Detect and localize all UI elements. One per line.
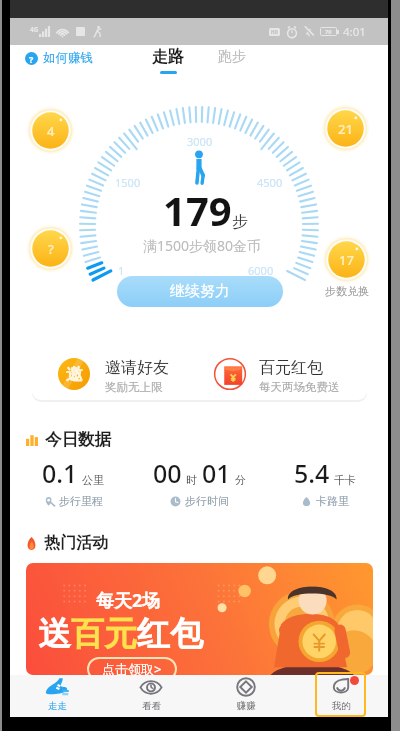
staticText: 分 <box>235 473 246 487</box>
staticText: 21 <box>338 120 353 138</box>
staticText: 00 <box>153 456 182 490</box>
staticText: 卡路里 <box>316 494 349 508</box>
button[interactable]: 21 <box>322 105 369 152</box>
button[interactable]: 走路 <box>152 47 184 74</box>
button[interactable]: 每天2场 <box>26 563 373 675</box>
staticText: 邀 <box>66 364 83 385</box>
button[interactable]: 赚赚 <box>198 675 293 717</box>
button[interactable]: 我的 <box>293 675 388 717</box>
staticText: 179 <box>163 183 232 237</box>
staticText: 红包 <box>137 613 203 655</box>
button[interactable]: 继续努力 <box>117 276 283 307</box>
button[interactable]: 邀 <box>58 347 169 400</box>
staticText: 看看 <box>142 700 161 712</box>
staticText: 时 <box>186 473 197 487</box>
staticText: HD <box>271 29 278 35</box>
staticText: 17 <box>339 251 354 269</box>
staticText: 点击领取> <box>102 660 162 675</box>
staticText: 跑步 <box>218 48 246 66</box>
button[interactable]: 4 <box>27 107 74 154</box>
staticText: 百元 <box>71 613 137 655</box>
staticText: 每天2场 <box>96 588 161 613</box>
button[interactable]: 5.4 <box>262 456 388 508</box>
staticText: 百元红包 <box>259 358 323 378</box>
staticText: 步数兑换 <box>325 284 369 298</box>
staticText: 3000 <box>187 134 213 149</box>
button[interactable]: 00 <box>136 456 262 508</box>
button[interactable]: 百元红包 <box>214 347 340 400</box>
button[interactable]: 看看 <box>104 675 198 717</box>
staticText: 邀请好友 <box>105 358 169 378</box>
button[interactable]: 17 <box>323 236 370 298</box>
staticText: 走路 <box>152 47 184 67</box>
staticText: 4G <box>30 25 39 34</box>
staticText: 5.4 <box>294 456 330 490</box>
staticText: 今日数据 <box>45 429 111 450</box>
button[interactable]: ? <box>25 50 93 66</box>
button[interactable]: 0.1 <box>10 456 136 508</box>
staticText: 走走 <box>48 700 67 712</box>
staticText: 1500 <box>115 175 141 190</box>
staticText: ? <box>29 53 34 65</box>
staticText: 我的 <box>332 700 351 712</box>
staticText: 送 <box>38 613 71 655</box>
staticText: 01 <box>202 456 231 490</box>
staticText: 1 <box>118 263 125 278</box>
staticText: 步行里程 <box>59 494 103 508</box>
staticText: 如何赚钱 <box>43 50 93 66</box>
staticText: 步行时间 <box>185 494 229 508</box>
staticText: 热门活动 <box>44 533 108 553</box>
staticText: 6000 <box>248 263 274 278</box>
staticText: 满1500步领80金币 <box>143 236 262 255</box>
staticText: 步 <box>232 212 248 232</box>
staticText: 4500 <box>257 175 283 190</box>
staticText: 70 <box>325 28 332 35</box>
staticText: 0.1 <box>42 456 78 490</box>
button[interactable]: 跑步 <box>218 48 246 66</box>
staticText: 奖励无上限 <box>105 380 163 394</box>
button[interactable]: 今日数据 <box>26 429 111 450</box>
button[interactable]: ? <box>27 225 74 272</box>
staticText: 每天两场免费送 <box>259 380 340 394</box>
staticText: 4:01 <box>343 24 366 40</box>
staticText: 千卡 <box>334 473 356 487</box>
button[interactable]: 走走 <box>10 675 104 717</box>
button[interactable]: 热门活动 <box>26 533 108 553</box>
staticText: 赚赚 <box>237 700 256 712</box>
staticText: 4 <box>47 122 55 140</box>
staticText: ? <box>48 240 54 258</box>
staticText: 继续努力 <box>170 282 230 301</box>
staticText: 公里 <box>82 473 104 487</box>
